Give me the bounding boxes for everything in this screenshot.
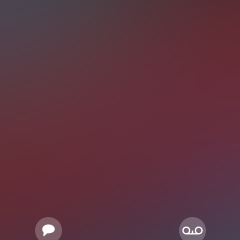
button[interactable]: Voicemail	[179, 217, 206, 240]
button[interactable]: Message	[35, 217, 62, 240]
